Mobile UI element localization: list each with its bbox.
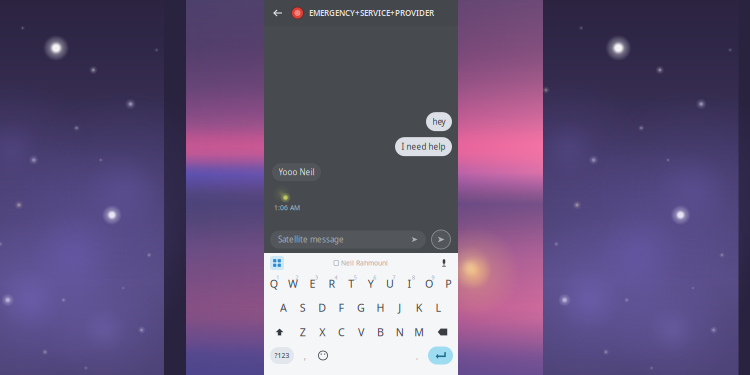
button[interactable]: B (371, 321, 390, 343)
staticText: Satellite message (278, 234, 344, 245)
staticText: J (398, 300, 401, 315)
button[interactable]: 9 (419, 272, 439, 294)
button[interactable]: N (390, 321, 409, 343)
button[interactable]: G (351, 296, 371, 318)
button[interactable]: 1 (264, 272, 283, 294)
staticText: A (280, 300, 287, 315)
button[interactable]: Send (431, 229, 451, 249)
staticText: 3 (315, 274, 318, 281)
staticText: L (436, 300, 442, 315)
staticText: 6 (373, 274, 376, 281)
button[interactable]: H (371, 296, 390, 318)
button[interactable]: X (312, 321, 332, 343)
staticText: 1:06 AM (274, 203, 300, 212)
button[interactable]: Clipboard (267, 254, 287, 272)
staticText: , (303, 348, 306, 363)
staticText: Neil Rahmouni (341, 259, 388, 267)
staticText: 4 (334, 274, 337, 281)
staticText: 2 (296, 274, 299, 281)
staticText: O (425, 276, 433, 291)
button[interactable]: D (312, 296, 332, 318)
button[interactable]: Satellite message (270, 230, 426, 248)
button[interactable]: M (409, 321, 429, 343)
button[interactable]: L (429, 296, 448, 318)
button[interactable]: . (410, 344, 424, 366)
staticText: 1 (276, 274, 279, 281)
button[interactable]: V (351, 321, 371, 343)
staticText: U (386, 276, 394, 291)
button[interactable]: Z (293, 321, 312, 343)
staticText: C (338, 325, 345, 339)
staticText: F (339, 300, 345, 315)
staticText: W (288, 276, 298, 291)
staticText: M (414, 325, 424, 339)
button[interactable]: 8 (400, 272, 419, 294)
staticText: E (309, 276, 315, 291)
button[interactable]: 4 (322, 272, 342, 294)
button[interactable]: Return (428, 346, 453, 364)
button[interactable]: Shift (266, 321, 293, 343)
staticText: T (348, 276, 354, 291)
button[interactable]: Backspace (429, 321, 456, 343)
button[interactable]: F (332, 296, 351, 318)
staticText: . (415, 348, 418, 363)
staticText: H (376, 300, 384, 315)
button[interactable]: K (409, 296, 429, 318)
staticText: 9 (431, 274, 434, 281)
staticText: hey (432, 116, 445, 127)
button[interactable]: 2 (283, 272, 303, 294)
button[interactable]: C (332, 321, 351, 343)
staticText: Yooo Neil (278, 167, 314, 177)
staticText: P (445, 276, 451, 291)
staticText: S (300, 300, 306, 315)
button[interactable]: Emoji (315, 344, 331, 366)
staticText: D (318, 300, 326, 315)
button[interactable]: , (298, 344, 312, 366)
staticText: X (319, 325, 325, 339)
button[interactable]: Back (264, 0, 291, 26)
button[interactable]: J (390, 296, 409, 318)
staticText: N (396, 325, 404, 339)
staticText: 5 (354, 274, 357, 281)
staticText: 7 (393, 274, 396, 281)
button[interactable]: A (274, 296, 293, 318)
button[interactable]: S (293, 296, 312, 318)
staticText: B (377, 325, 384, 339)
button[interactable]: 3 (303, 272, 322, 294)
button[interactable]: Voice input (436, 255, 452, 271)
staticText: Q (270, 276, 278, 291)
staticText: ?123 (274, 351, 289, 360)
button[interactable]: Neil Rahmouni (316, 255, 406, 271)
button[interactable]: 7 (380, 272, 400, 294)
staticText: I need help (401, 141, 445, 152)
staticText: 8 (412, 274, 415, 281)
button[interactable]: ?123 (270, 347, 294, 364)
staticText: Y (368, 276, 374, 291)
staticText: V (358, 325, 364, 339)
staticText: EMERGENCY+SERVICE+PROVIDER (309, 8, 434, 18)
staticText: K (416, 300, 423, 315)
button[interactable]: 5 (342, 272, 361, 294)
staticText: I (407, 276, 411, 291)
staticText: G (357, 300, 365, 315)
staticText: R (328, 276, 335, 291)
button[interactable]: P (439, 272, 458, 294)
staticText: Z (300, 325, 306, 339)
button[interactable]: 6 (361, 272, 380, 294)
